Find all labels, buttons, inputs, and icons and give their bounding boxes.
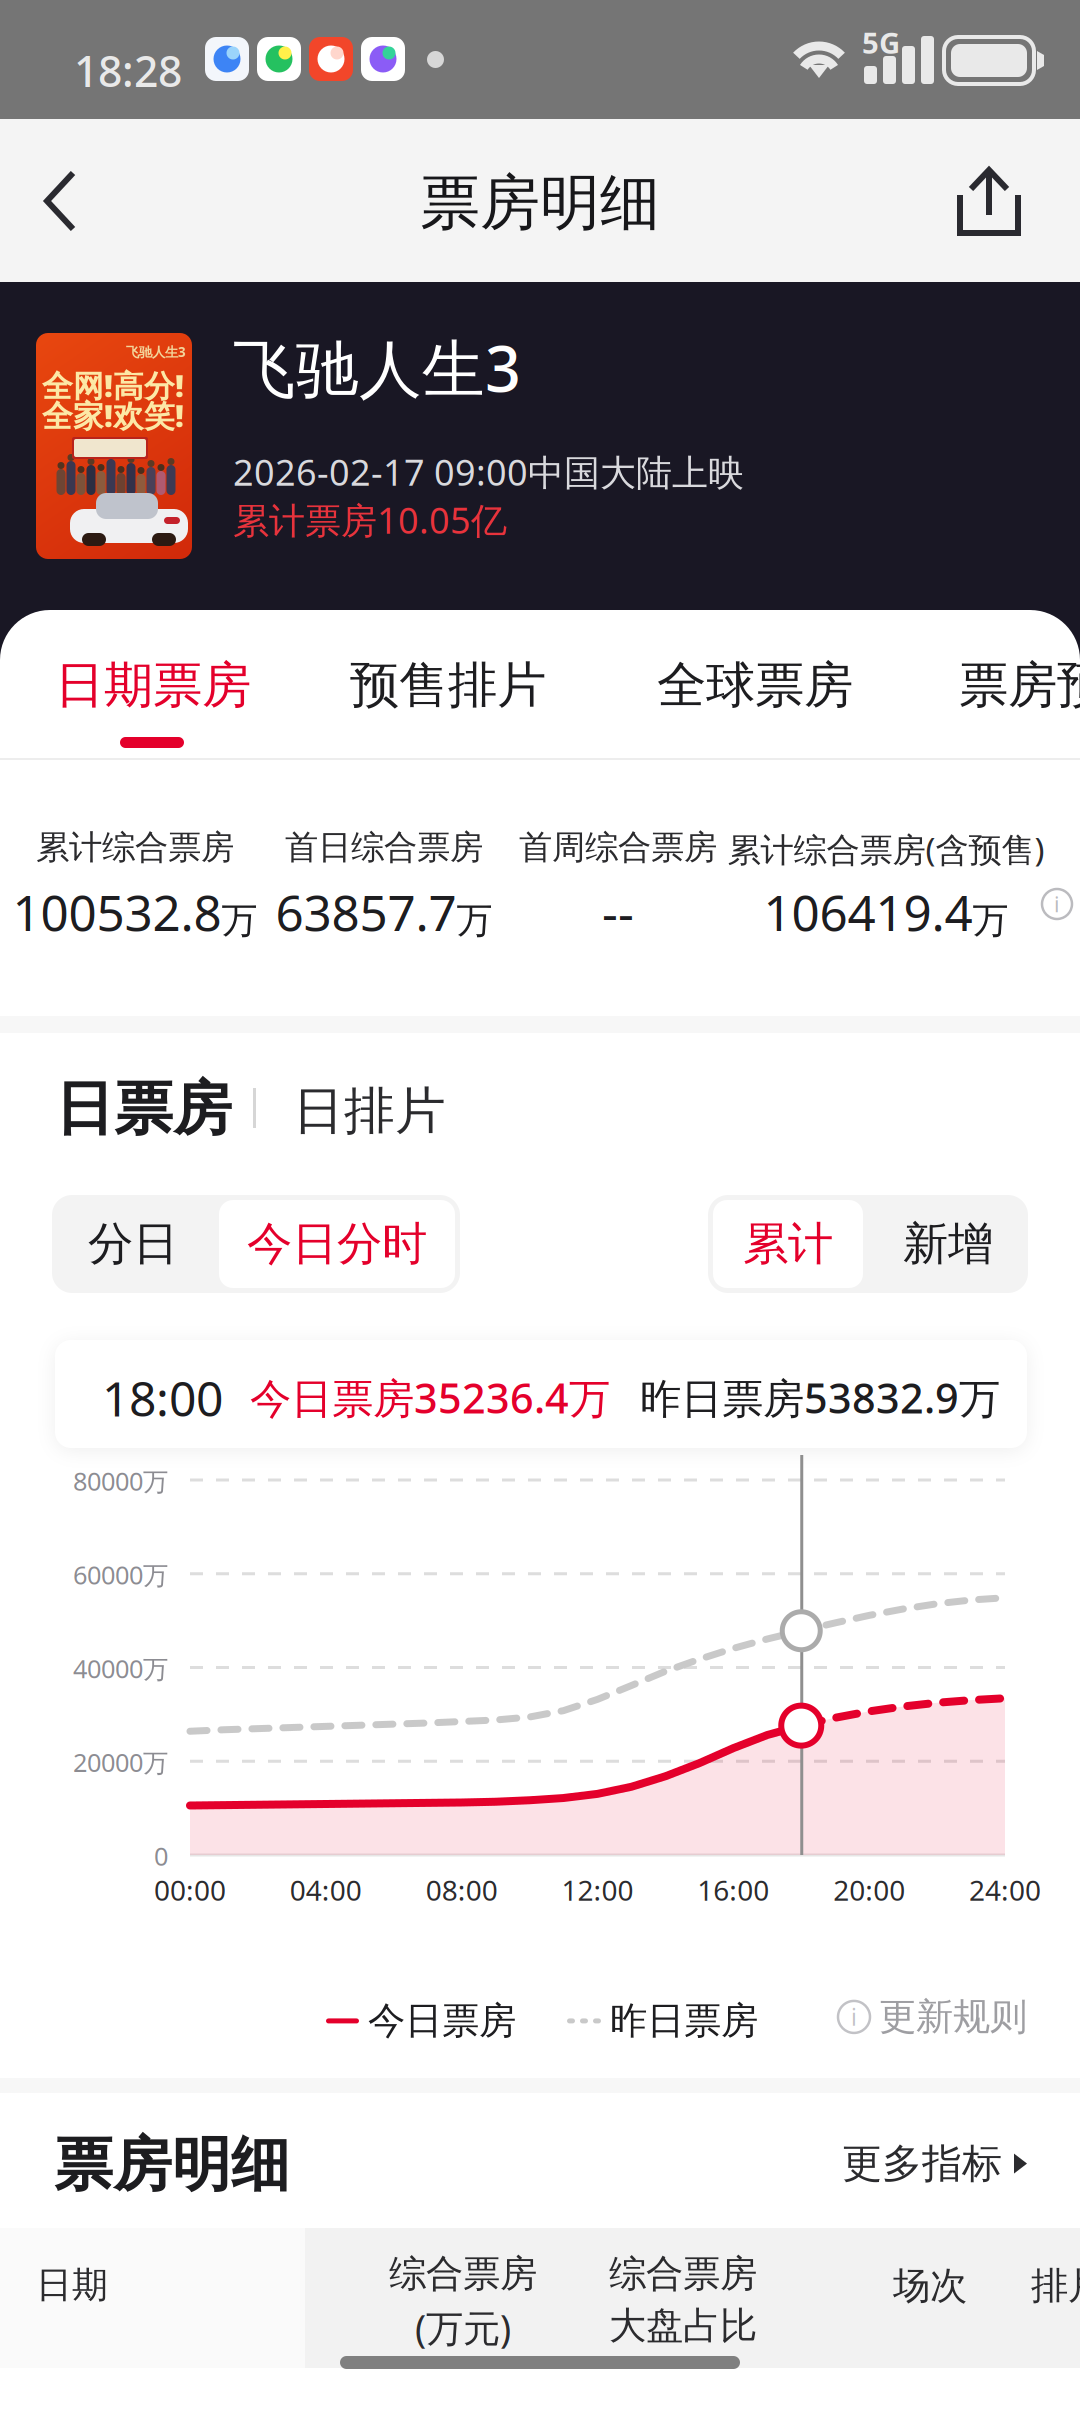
staticText: 更多指标 — [842, 2139, 1002, 2188]
staticText: 04:00 — [290, 1871, 362, 1909]
staticText: 昨日票房53832.9万 — [640, 1370, 1000, 1425]
button[interactable]: Back — [0, 141, 126, 263]
staticText: 飞驰人生3 — [126, 343, 186, 361]
staticText: 首日综合票房 — [285, 827, 483, 868]
staticText: 综合票房 — [389, 2251, 537, 2297]
staticText: 今日票房 — [368, 1998, 516, 2044]
staticText: 18:00 — [102, 1366, 223, 1430]
staticText: 预售排片 — [350, 655, 546, 716]
staticText: 分日 — [88, 1216, 178, 1272]
button[interactable]: 全球票房 — [657, 655, 857, 755]
staticText: 万 — [972, 898, 1008, 942]
staticText: 累计综合票房 — [36, 827, 234, 868]
staticText: 12:00 — [561, 1871, 633, 1909]
staticText: 票房明细 — [54, 2129, 290, 2201]
staticText: 60000万 — [73, 1558, 168, 1591]
staticText: 18:28 — [74, 42, 182, 99]
staticText: 全家!欢笑! — [42, 395, 184, 436]
button[interactable]: 分日 — [52, 1195, 214, 1293]
staticText: 5G — [862, 23, 900, 62]
staticText: i — [1054, 890, 1060, 918]
button[interactable]: 日排片 — [293, 1080, 446, 1142]
staticText: 综合票房 — [609, 2251, 757, 2297]
staticText: 今日分时 — [247, 1216, 427, 1272]
staticText: 全球票房 — [657, 655, 853, 716]
staticText: 排片 — [1031, 2263, 1080, 2309]
button[interactable]: 预售排片 — [350, 655, 550, 755]
button[interactable]: 更多指标 — [842, 2139, 1027, 2188]
staticText: -- — [602, 879, 634, 944]
staticText: 63857.7 — [275, 879, 456, 944]
staticText: 08:00 — [426, 1871, 498, 1909]
staticText: 24:00 — [969, 1871, 1041, 1909]
staticText: (万元) — [415, 2303, 511, 2352]
staticText: 场次 — [893, 2263, 967, 2309]
button[interactable]: 票房预 — [959, 655, 1080, 755]
button[interactable]: Share — [928, 141, 1056, 263]
staticText: 今日票房35236.4万 — [250, 1370, 610, 1425]
staticText: 全网!高分! — [42, 365, 184, 406]
staticText: 20:00 — [833, 1871, 905, 1909]
button[interactable]: 今日分时 — [214, 1195, 460, 1293]
staticText: 40000万 — [73, 1652, 168, 1685]
button[interactable]: i — [838, 1994, 1027, 2040]
staticText: 2026-02-17 09:00中国大陆上映 — [233, 448, 744, 496]
staticText: 20000万 — [73, 1745, 168, 1779]
staticText: 大盘占比 — [609, 2303, 757, 2349]
staticText: 日期 — [36, 2263, 108, 2307]
staticText: 日排片 — [293, 1080, 446, 1142]
button[interactable]: 新增 — [868, 1195, 1028, 1293]
staticText: 票房明细 — [420, 166, 660, 240]
staticText: 累计 — [743, 1216, 833, 1272]
button[interactable]: 今日票房 — [326, 1998, 516, 2044]
staticText: 万 — [221, 898, 257, 942]
staticText: 累计综合票房(含预售) — [727, 827, 1044, 871]
staticText: 日票房 — [55, 1073, 232, 1145]
staticText: 更新规则 — [879, 1994, 1027, 2040]
button[interactable]: 日期票房 — [55, 655, 255, 755]
staticText: 80000万 — [73, 1464, 168, 1498]
staticText: i — [851, 2002, 857, 2032]
staticText: 106419.4 — [763, 879, 972, 944]
button[interactable]: 日票房 — [55, 1073, 232, 1145]
staticText: 万 — [456, 898, 492, 942]
button[interactable]: 累计 — [708, 1195, 868, 1293]
staticText: 新增 — [903, 1216, 993, 1272]
staticText: 100532.8 — [12, 879, 221, 944]
staticText: 飞驰人生3 — [233, 326, 521, 409]
staticText: 累计票房10.05亿 — [233, 496, 507, 544]
staticText: 00:00 — [154, 1871, 226, 1909]
staticText: 昨日票房 — [610, 1998, 758, 2044]
staticText: 票房预 — [959, 655, 1080, 716]
button[interactable]: 昨日票房 — [567, 1998, 758, 2044]
staticText: 0 — [154, 1839, 168, 1873]
staticText: 16:00 — [697, 1871, 769, 1909]
staticText: 日期票房 — [55, 655, 251, 716]
staticText: 首周综合票房 — [519, 827, 717, 868]
